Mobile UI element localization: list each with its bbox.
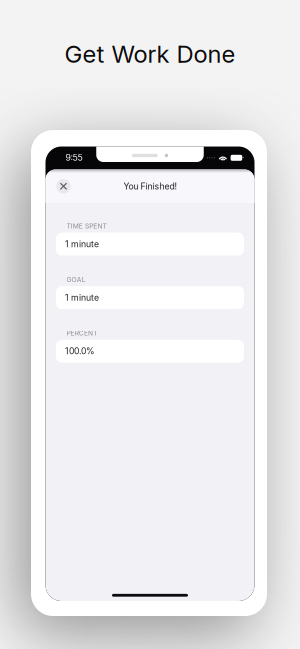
staticText: TIME SPENT xyxy=(66,222,107,230)
staticText: 1 minute xyxy=(65,239,99,249)
staticText: 1 minute xyxy=(65,292,99,303)
staticText: GOAL xyxy=(66,276,86,284)
staticText: PERCENT xyxy=(66,329,97,337)
button[interactable]: Close xyxy=(51,174,75,198)
staticText: 9:55 xyxy=(65,152,82,163)
staticText: 100.0% xyxy=(65,346,95,356)
staticText: You Finished! xyxy=(123,181,176,191)
staticText: Get Work Done xyxy=(64,39,235,68)
